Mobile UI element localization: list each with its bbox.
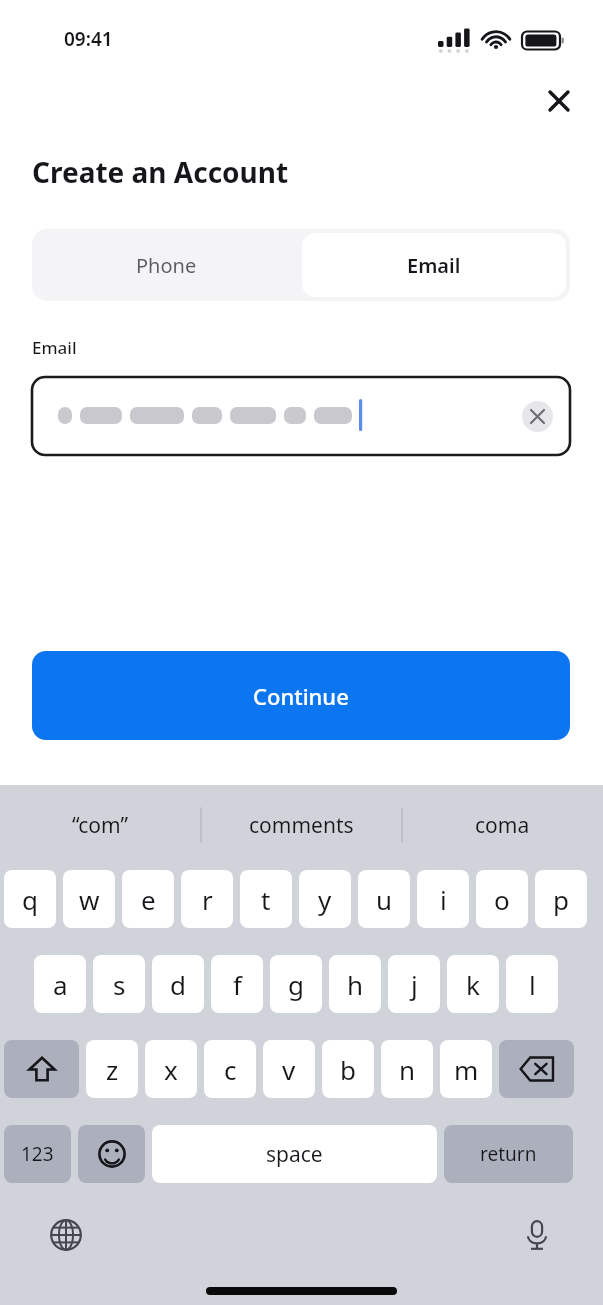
button[interactable]: k xyxy=(447,955,499,1013)
button[interactable]: Close xyxy=(535,77,583,125)
staticText: comments xyxy=(249,811,354,840)
button[interactable]: s xyxy=(93,955,145,1013)
button[interactable]: g xyxy=(270,955,322,1013)
staticText: y xyxy=(318,882,332,917)
button[interactable]: q xyxy=(4,870,56,928)
button[interactable]: Email xyxy=(302,233,566,297)
staticText: h xyxy=(347,967,364,1002)
staticText: k xyxy=(466,967,480,1002)
button[interactable]: b xyxy=(322,1040,374,1098)
staticText: d xyxy=(170,967,186,1002)
button[interactable]: n xyxy=(381,1040,433,1098)
button[interactable]: Continue xyxy=(32,651,570,740)
button[interactable]: a xyxy=(34,955,86,1013)
button[interactable]: m xyxy=(440,1040,492,1098)
staticText: t xyxy=(261,882,271,917)
button[interactable]: e xyxy=(122,870,174,928)
button[interactable]: t xyxy=(240,870,292,928)
button[interactable]: Shift xyxy=(4,1040,79,1098)
button[interactable]: c xyxy=(204,1040,256,1098)
button[interactable]: v xyxy=(263,1040,315,1098)
staticText: w xyxy=(79,882,100,917)
staticText: l xyxy=(529,967,536,1002)
staticText: x xyxy=(164,1052,178,1087)
staticText: p xyxy=(553,882,569,917)
staticText: v xyxy=(282,1052,296,1087)
button[interactable]: u xyxy=(358,870,410,928)
staticText: c xyxy=(224,1052,237,1087)
staticText: Phone xyxy=(136,252,197,279)
staticText: Create an Account xyxy=(32,153,289,191)
button[interactable]: d xyxy=(152,955,204,1013)
staticText: i xyxy=(440,882,447,917)
button[interactable]: return xyxy=(444,1125,573,1183)
button[interactable]: x xyxy=(145,1040,197,1098)
button[interactable]: Switch keyboard xyxy=(42,1211,90,1259)
button[interactable]: z xyxy=(86,1040,138,1098)
button[interactable]: Backspace xyxy=(499,1040,574,1098)
staticText: o xyxy=(494,882,510,917)
staticText: 123 xyxy=(21,1141,54,1167)
button[interactable]: j xyxy=(388,955,440,1013)
staticText: q xyxy=(22,882,38,917)
button[interactable]: Emoji xyxy=(78,1125,145,1183)
staticText: j xyxy=(411,967,418,1002)
staticText: m xyxy=(454,1052,479,1087)
button[interactable]: f xyxy=(211,955,263,1013)
staticText: u xyxy=(376,882,393,917)
staticText: “com” xyxy=(72,811,129,840)
button[interactable]: l xyxy=(506,955,558,1013)
staticText: Email xyxy=(32,336,77,359)
button[interactable]: coma xyxy=(402,785,603,865)
button[interactable]: Phone xyxy=(32,229,301,301)
staticText: f xyxy=(233,967,242,1002)
staticText: Continue xyxy=(253,681,349,711)
button[interactable]: w xyxy=(63,870,115,928)
staticText: r xyxy=(202,882,213,917)
staticText: g xyxy=(288,967,304,1002)
staticText: e xyxy=(141,882,156,917)
staticText: space xyxy=(266,1140,323,1169)
button[interactable]: h xyxy=(329,955,381,1013)
staticText: b xyxy=(340,1052,356,1087)
button[interactable]: r xyxy=(181,870,233,928)
staticText: a xyxy=(53,967,68,1002)
button[interactable]: “com” xyxy=(0,785,201,865)
button[interactable]: Clear xyxy=(32,377,570,455)
button[interactable]: Dictate xyxy=(513,1211,561,1259)
button[interactable]: p xyxy=(535,870,587,928)
staticText: coma xyxy=(475,811,530,840)
button[interactable]: i xyxy=(417,870,469,928)
staticText: z xyxy=(106,1052,119,1087)
staticText: s xyxy=(113,967,126,1002)
button[interactable]: y xyxy=(299,870,351,928)
button[interactable]: space xyxy=(152,1125,437,1183)
button[interactable]: comments xyxy=(201,785,402,865)
button[interactable]: 123 xyxy=(4,1125,71,1183)
staticText: 09:41 xyxy=(64,26,113,52)
button[interactable]: o xyxy=(476,870,528,928)
staticText: n xyxy=(399,1052,416,1087)
staticText: Email xyxy=(407,252,461,279)
button[interactable]: Clear xyxy=(522,401,553,432)
staticText: return xyxy=(480,1141,537,1167)
